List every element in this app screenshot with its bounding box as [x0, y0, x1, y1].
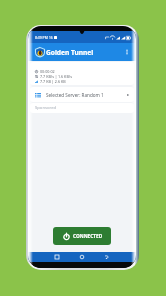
staticText: 7.7 KB | 2.6 KB — [40, 79, 66, 84]
staticText: CONNECTED — [73, 233, 103, 240]
staticText: 8:39 PM — [35, 35, 48, 40]
button[interactable]: Recent apps — [52, 252, 62, 262]
staticText: 7.7 KB/s | 1.6 KB/s — [40, 74, 72, 79]
button[interactable]: More options — [122, 47, 132, 57]
button[interactable]: Back — [102, 252, 112, 262]
staticText: Sponsored — [35, 105, 57, 111]
staticText: 00:00:02 — [40, 69, 55, 74]
button[interactable]: CONNECTED — [53, 227, 111, 245]
staticText: Golden Tunnel — [46, 48, 94, 57]
button[interactable]: Home — [77, 252, 87, 262]
button[interactable]: Selected Server: Random 1 — [30, 87, 134, 102]
staticText: Selected Server: Random 1 — [46, 92, 104, 98]
staticText: 16 — [49, 36, 53, 40]
